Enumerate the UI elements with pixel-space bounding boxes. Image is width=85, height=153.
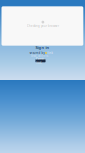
staticText: link	[48, 51, 53, 55]
staticText: Checking your browser	[27, 24, 59, 28]
staticText: secured by	[29, 51, 44, 55]
staticText: Sign in	[35, 45, 49, 50]
staticText: Continue	[36, 57, 45, 64]
staticText: Email address	[31, 54, 48, 58]
button[interactable]: Continue	[35, 59, 46, 62]
